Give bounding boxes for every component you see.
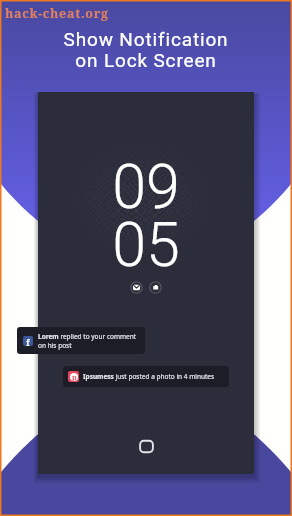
button[interactable]: Messages — [130, 281, 143, 294]
staticText: hack-cheat.org — [5, 5, 109, 22]
button[interactable]: Home — [134, 434, 158, 458]
button[interactable]: p — [63, 366, 229, 387]
staticText: Ipsumess just posted a photo in 4 minute… — [83, 372, 215, 381]
staticText: f — [26, 336, 30, 346]
staticText: 09 05 — [38, 151, 254, 281]
button[interactable]: Camera — [149, 281, 162, 294]
staticText: Show Notification on Lock Screen — [0, 28, 292, 71]
button[interactable]: f — [17, 327, 145, 354]
staticText: Lorem replied to your comment on his pos… — [38, 332, 142, 350]
staticText: p — [72, 373, 77, 381]
